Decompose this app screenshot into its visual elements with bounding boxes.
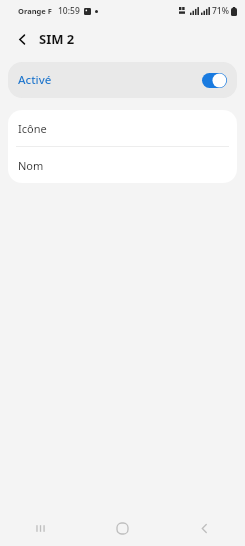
button[interactable]: Back	[8, 25, 36, 53]
staticText: Orange F	[18, 6, 52, 16]
staticText: Icône	[18, 121, 47, 136]
staticText: SIM 2	[39, 30, 75, 48]
button[interactable]: Recent apps	[0, 510, 81, 546]
staticText: 71%	[212, 5, 229, 17]
button[interactable]: Activé	[8, 62, 237, 98]
button[interactable]: Back	[163, 510, 245, 546]
staticText: Nom	[18, 158, 44, 173]
staticText: Activé	[18, 72, 52, 88]
button[interactable]: Nom	[8, 147, 237, 183]
button[interactable]: Home	[81, 510, 163, 546]
button[interactable]: Icône	[8, 110, 237, 146]
staticText: 10:59	[58, 5, 80, 17]
